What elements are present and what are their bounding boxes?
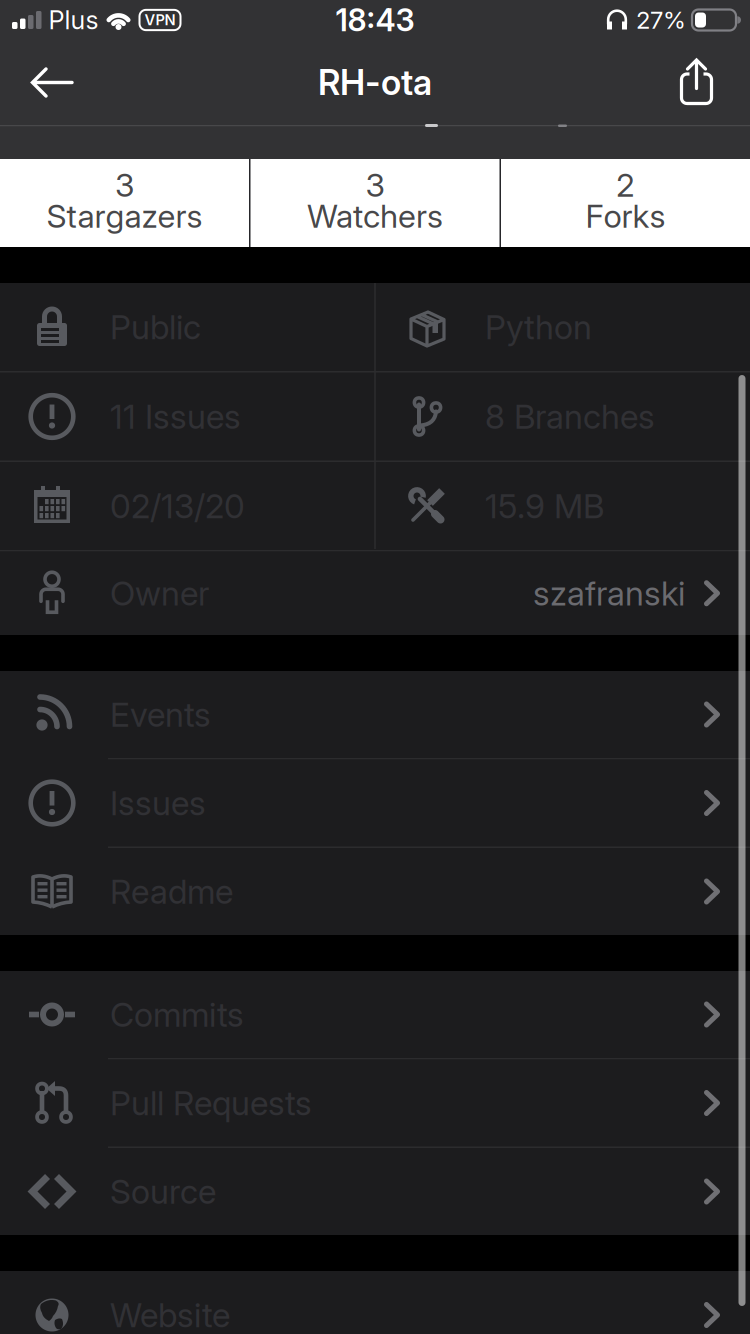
staticText: Website bbox=[110, 1295, 230, 1334]
staticText: Events bbox=[110, 695, 211, 734]
staticText: Owner bbox=[110, 574, 209, 613]
button[interactable]: Issues bbox=[0, 759, 750, 846]
button[interactable]: 3 bbox=[250, 169, 499, 237]
button[interactable]: Website bbox=[0, 1271, 750, 1334]
staticText: 27% bbox=[636, 6, 686, 34]
staticText: Public bbox=[110, 307, 201, 347]
button[interactable]: Source bbox=[0, 1148, 750, 1235]
staticText: Forks bbox=[585, 197, 665, 235]
staticText: Watchers bbox=[307, 197, 443, 235]
staticText: 02/13/20 bbox=[110, 486, 245, 526]
button[interactable]: Back bbox=[0, 67, 74, 97]
staticText: VPN bbox=[144, 11, 175, 29]
button[interactable]: Share bbox=[675, 57, 750, 107]
button[interactable]: Readme bbox=[0, 848, 750, 935]
button[interactable]: Owner bbox=[0, 551, 750, 635]
button[interactable]: Events bbox=[0, 671, 750, 758]
staticText: Readme bbox=[110, 872, 233, 911]
staticText: Stargazers bbox=[46, 197, 202, 235]
staticText: Commits bbox=[110, 995, 244, 1034]
staticText: Pull Requests bbox=[110, 1083, 312, 1123]
staticText: 3 bbox=[365, 166, 384, 204]
button[interactable]: 2 bbox=[501, 169, 750, 237]
staticText: Issues bbox=[110, 783, 206, 823]
staticText: 3 bbox=[115, 166, 134, 204]
staticText: szafranski bbox=[533, 574, 685, 613]
staticText: Source bbox=[110, 1172, 216, 1211]
button[interactable]: Pull Requests bbox=[0, 1059, 750, 1146]
button[interactable]: 3 bbox=[0, 169, 249, 237]
staticText: 2 bbox=[616, 166, 635, 204]
staticText: 11 Issues bbox=[110, 397, 241, 436]
button[interactable]: Commits bbox=[0, 971, 750, 1058]
staticText: RH-ota bbox=[318, 62, 432, 103]
staticText: 18:43 bbox=[335, 2, 414, 38]
staticText: 8 Branches bbox=[485, 397, 655, 436]
staticText: Plus bbox=[48, 5, 98, 35]
staticText: Python bbox=[485, 307, 592, 347]
staticText: 15.9 MB bbox=[485, 486, 604, 526]
